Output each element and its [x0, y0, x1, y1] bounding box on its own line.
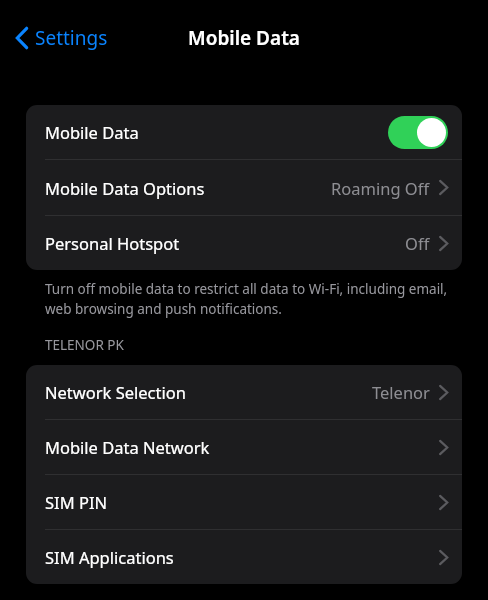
staticText: Mobile Data Options [45, 177, 205, 199]
button[interactable]: Mobile Data Options [26, 160, 462, 215]
staticText: Off [405, 232, 430, 254]
staticText: Telenor [372, 381, 430, 403]
button[interactable]: SIM Applications [26, 530, 462, 584]
button[interactable]: Personal Hotspot [26, 216, 462, 270]
staticText: Personal Hotspot [45, 232, 180, 254]
staticText: Turn off mobile data to restrict all dat… [45, 280, 452, 318]
button[interactable]: Settings [12, 19, 112, 57]
staticText: Mobile Data [45, 121, 139, 143]
staticText: SIM Applications [45, 546, 174, 568]
button[interactable]: Mobile Data [26, 105, 462, 159]
staticText: Settings [35, 25, 108, 51]
button[interactable]: SIM PIN [26, 475, 462, 529]
staticText: SIM PIN [45, 491, 108, 513]
button[interactable]: Network Selection [26, 365, 462, 419]
staticText: Roaming Off [331, 177, 430, 199]
staticText: TELENOR PK [45, 336, 124, 354]
staticText: Mobile Data [188, 25, 300, 51]
button[interactable]: Mobile Data toggle [388, 116, 448, 149]
staticText: Network Selection [45, 381, 186, 403]
button[interactable]: Mobile Data Network [26, 420, 462, 474]
staticText: Mobile Data Network [45, 436, 210, 458]
